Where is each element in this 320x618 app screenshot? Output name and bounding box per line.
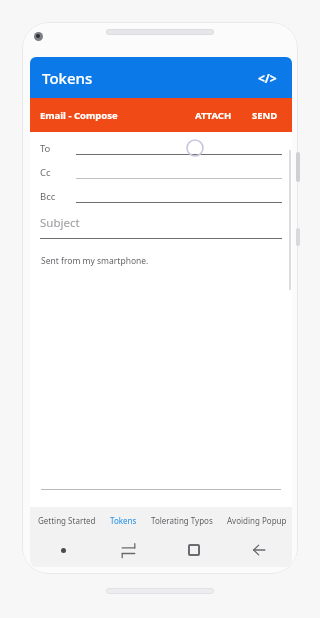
staticText: Sent from my smartphone. (41, 255, 149, 267)
staticText: Cc (40, 166, 51, 179)
button[interactable]: Avoiding Popup (227, 515, 287, 526)
button[interactable]: Cc (40, 166, 282, 179)
button[interactable]: Tolerating Typos (151, 515, 213, 526)
staticText: SEND (252, 109, 278, 122)
button[interactable]: Getting Started (38, 515, 96, 526)
button[interactable]: Back (244, 535, 274, 565)
button[interactable]: Bcc (40, 190, 282, 203)
button[interactable]: View source code (254, 65, 280, 91)
staticText: Avoiding Popup (227, 515, 287, 526)
button[interactable]: Recent apps (179, 535, 209, 565)
staticText: To (40, 142, 51, 155)
button[interactable]: To (40, 142, 282, 155)
staticText: Tolerating Typos (151, 515, 213, 526)
button[interactable]: Switch (113, 535, 143, 565)
other: Touch indicator (186, 139, 204, 157)
staticText: Subject (40, 215, 80, 231)
staticText: </> (258, 70, 277, 86)
button[interactable]: Home dot (48, 535, 78, 565)
button[interactable]: ATTACH (191, 105, 236, 126)
button[interactable]: Tokens (110, 515, 137, 526)
staticText: Email - Compose (40, 109, 118, 122)
button[interactable]: Tokens (42, 68, 93, 88)
staticText: ATTACH (195, 109, 232, 122)
button[interactable]: Sent from my smartphone. (41, 255, 281, 267)
staticText: Tokens (110, 515, 137, 526)
staticText: Bcc (40, 190, 56, 203)
staticText: Tokens (42, 68, 93, 88)
button[interactable]: SEND (248, 105, 282, 126)
staticText: Getting Started (38, 515, 96, 526)
button[interactable]: Subject (40, 215, 282, 239)
